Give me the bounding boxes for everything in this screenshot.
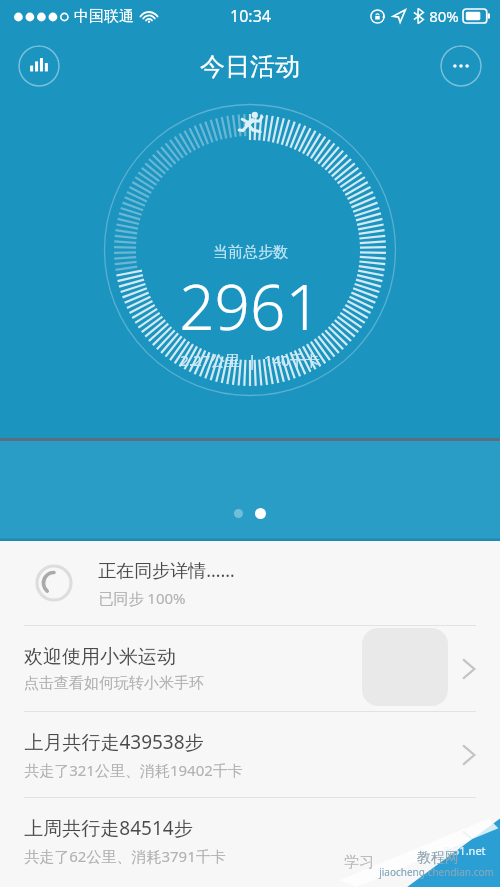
staticText: 当前总步数 (213, 243, 288, 262)
staticText: jb51.net (443, 843, 486, 858)
staticText: 上月共行走439538步 (24, 729, 204, 755)
staticText: 学习 (344, 853, 374, 872)
staticText: 正在同步详情…… (98, 558, 235, 583)
button[interactable]: More options (440, 45, 482, 87)
button[interactable]: 上周共行走84514步 (0, 798, 500, 883)
staticText: 共走了62公里、消耗3791千卡 (24, 846, 226, 866)
staticText: 10:34 (230, 5, 271, 27)
staticText: jiaocheng.chendian.com (379, 865, 494, 879)
staticText: 80% (429, 6, 459, 26)
staticText: 已同步 100% (98, 588, 186, 608)
staticText: 点击查看如何玩转小米手环 (24, 674, 204, 693)
staticText: 共走了321公里、消耗19402千卡 (24, 760, 243, 780)
button[interactable]: Statistics (18, 45, 60, 87)
button[interactable]: 欢迎使用小米运动 (0, 626, 500, 711)
staticText: 上周共行走84514步 (24, 815, 193, 841)
button[interactable]: 上月共行走439538步 (0, 712, 500, 797)
staticText: 2.27公里 | 140千卡 (180, 350, 320, 370)
staticText: 教程网 (417, 849, 459, 867)
button[interactable]: 正在同步详情…… (0, 541, 500, 625)
staticText: 今日活动 (200, 51, 300, 82)
staticText: 中国联通 (74, 7, 134, 26)
staticText: 2961 (179, 264, 321, 348)
staticText: 欢迎使用小米运动 (24, 645, 176, 669)
